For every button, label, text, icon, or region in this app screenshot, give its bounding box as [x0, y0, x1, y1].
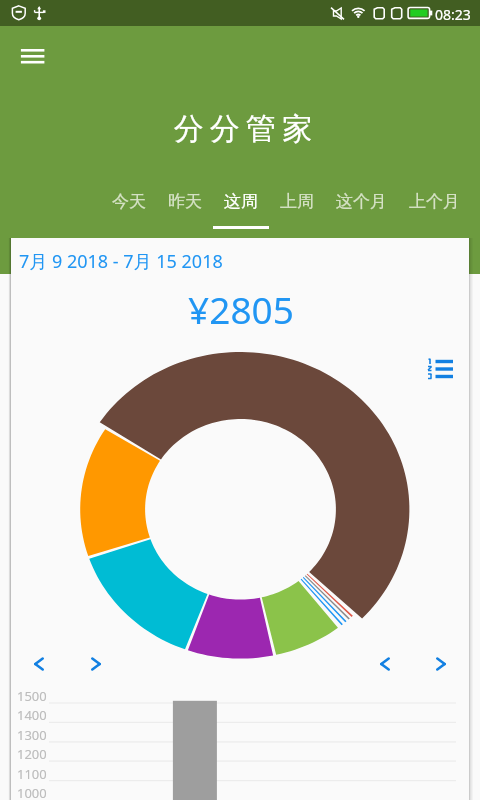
staticText: 1200	[17, 745, 47, 763]
staticText: 7月 9 2018 - 7月 15 2018	[19, 249, 223, 274]
staticText: 今天	[112, 191, 146, 212]
button[interactable]: 昨天	[157, 191, 213, 229]
staticText: 这个月	[336, 191, 387, 212]
staticText: 这周	[224, 191, 258, 212]
staticText: 1400	[17, 706, 47, 724]
staticText: 上周	[280, 191, 314, 212]
button[interactable]: 上个月	[398, 191, 471, 229]
button[interactable]: Next period	[430, 653, 452, 675]
button[interactable]: 这周	[213, 191, 269, 229]
staticText: 08:23	[435, 5, 471, 24]
staticText: 昨天	[168, 191, 202, 212]
button[interactable]: List view	[424, 355, 456, 387]
button[interactable]: Previous period	[374, 653, 396, 675]
staticText: 1300	[17, 726, 47, 744]
staticText: 1100	[17, 765, 47, 783]
button[interactable]: Menu	[12, 40, 52, 80]
button[interactable]: 上周	[269, 191, 325, 229]
button[interactable]: Next category	[85, 653, 107, 675]
button[interactable]: 今天	[101, 191, 157, 229]
staticText: 1000	[17, 784, 47, 800]
staticText: ¥2805	[12, 284, 470, 334]
button[interactable]: Previous category	[28, 653, 50, 675]
staticText: 分分管家	[171, 110, 315, 148]
button[interactable]: 这个月	[325, 191, 398, 229]
staticText: 上个月	[409, 191, 460, 212]
staticText: 1500	[17, 687, 47, 705]
